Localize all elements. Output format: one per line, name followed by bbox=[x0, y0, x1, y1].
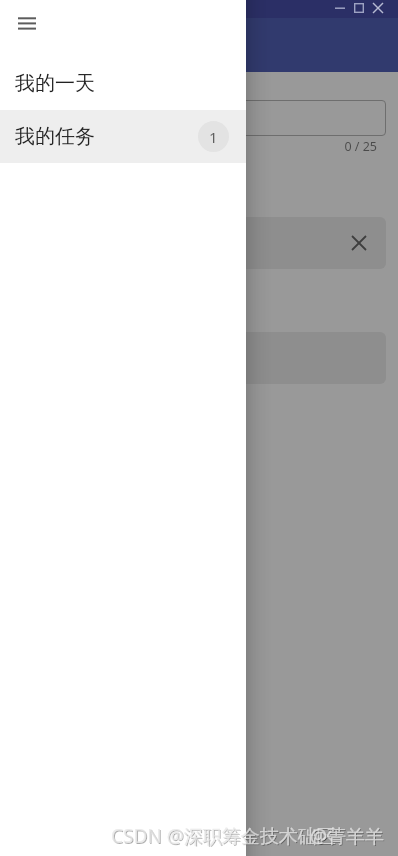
staticText: 1 bbox=[209, 127, 218, 147]
staticText: CSDN @深职筹金技术础区 bbox=[111, 823, 336, 849]
staticText: 0 / 25 bbox=[0, 138, 377, 155]
staticText: 我的任务 bbox=[15, 124, 95, 149]
staticText: 我的一天 bbox=[15, 71, 95, 96]
button[interactable] bbox=[13, 100, 386, 136]
staticText: CSDN @深职筹金技术础区 bbox=[112, 824, 337, 850]
button[interactable] bbox=[13, 332, 386, 384]
button[interactable]: Minimize bbox=[330, 0, 349, 18]
button[interactable]: Close bbox=[368, 0, 387, 18]
button[interactable]: Open navigation menu bbox=[18, 14, 36, 32]
button[interactable]: 我的任务 bbox=[0, 110, 246, 163]
button[interactable]: 我的一天 bbox=[0, 57, 246, 110]
button[interactable]: Maximize bbox=[349, 0, 368, 18]
staticText: @菁羊羊 bbox=[311, 824, 386, 850]
staticText: @菁羊羊 bbox=[310, 823, 385, 849]
button[interactable]: Close bbox=[13, 217, 386, 269]
button[interactable]: Close bbox=[345, 229, 373, 257]
